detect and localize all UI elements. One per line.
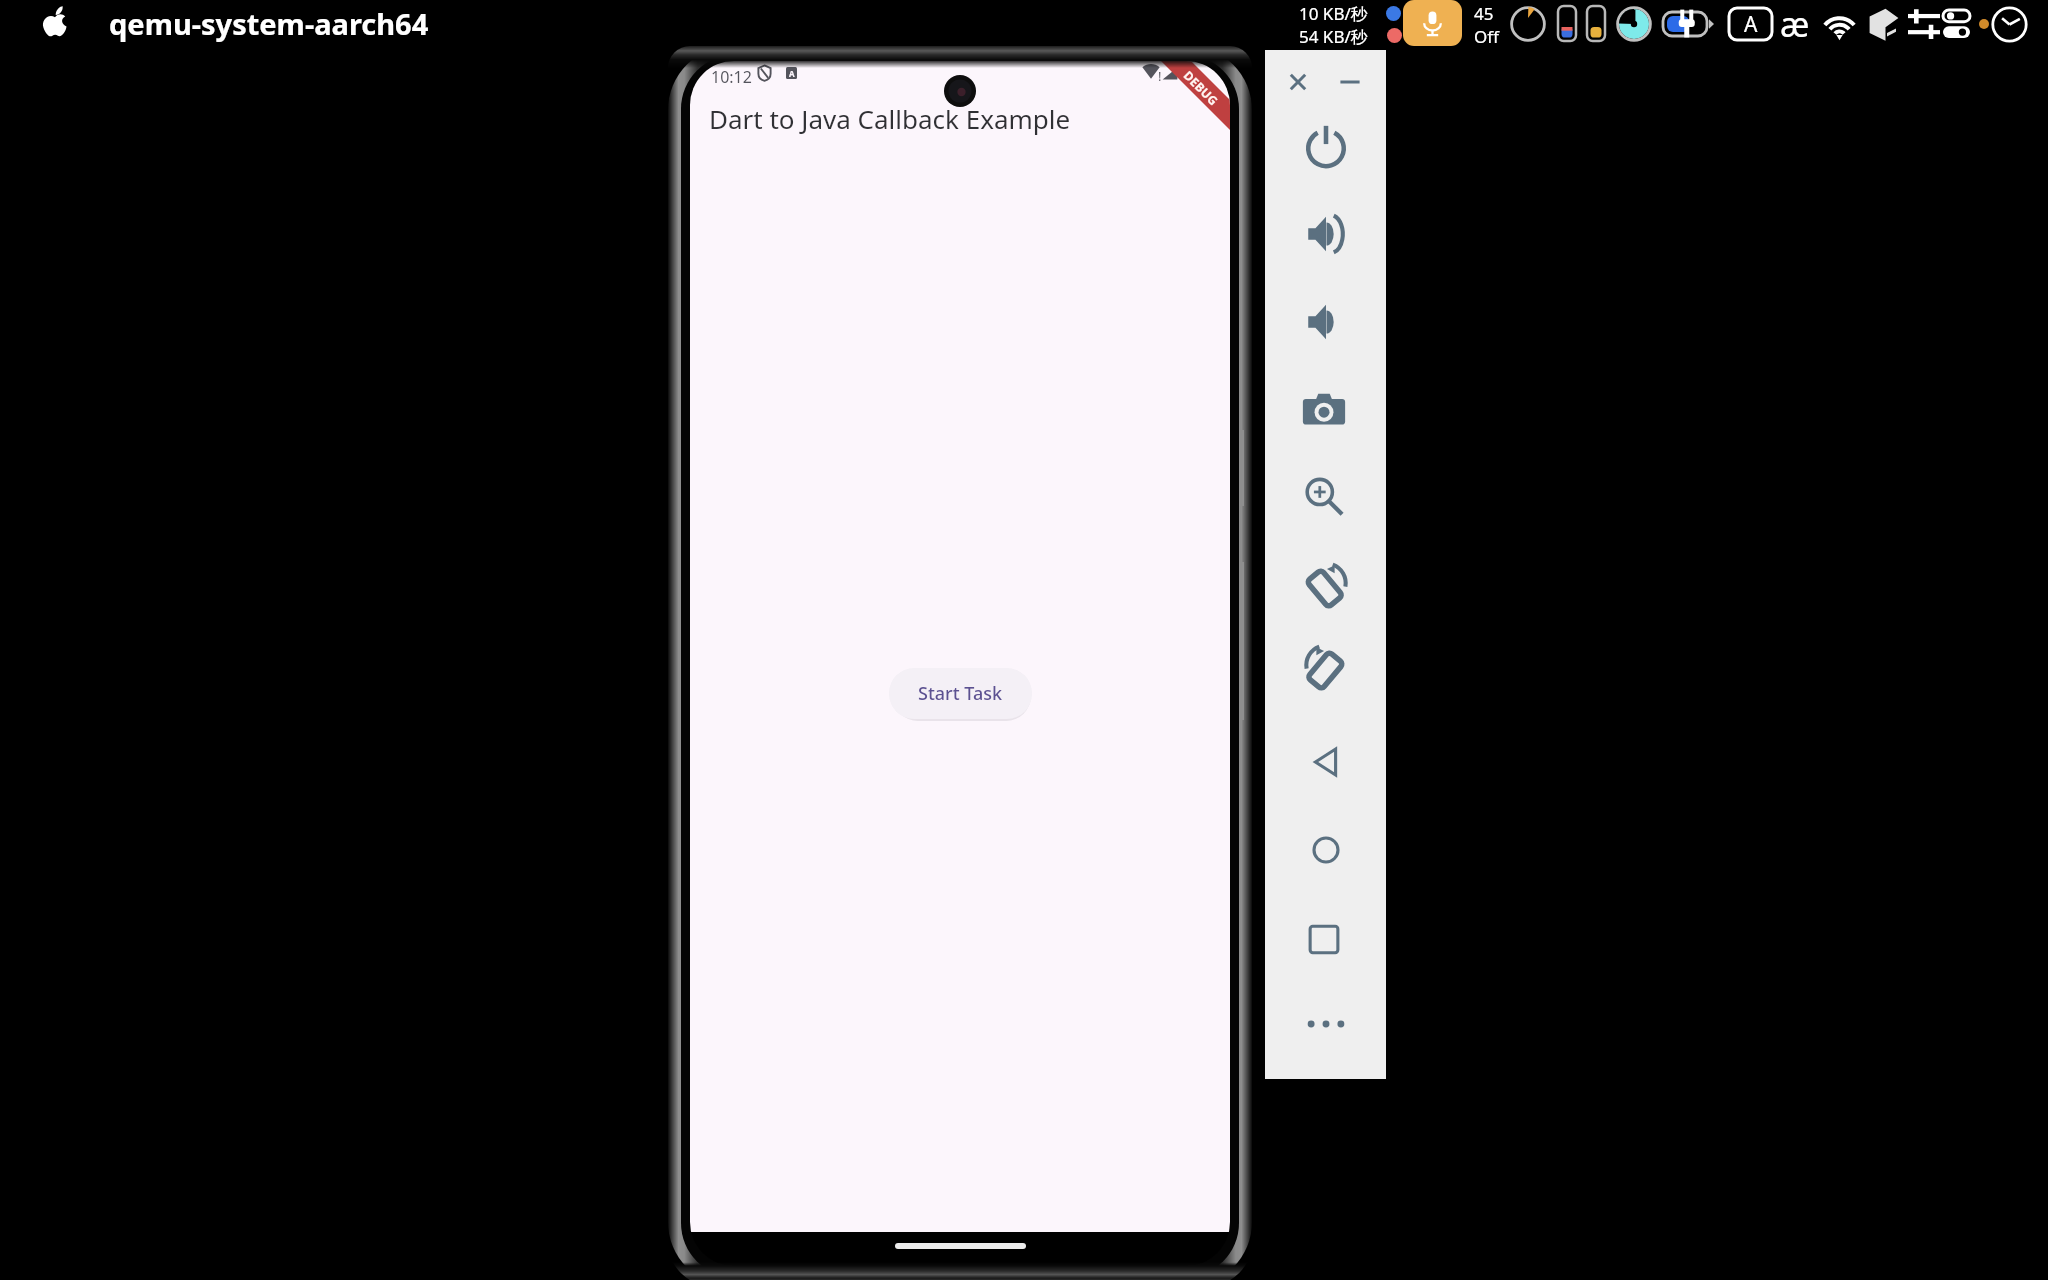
button[interactable]: App xyxy=(1869,8,1899,41)
button[interactable]: Microphone xyxy=(1403,0,1462,46)
button[interactable]: qemu-system-aarch64 xyxy=(109,4,429,42)
button[interactable]: Controls xyxy=(1908,8,1940,39)
staticText: 10 KB/秒 xyxy=(1299,2,1368,25)
button[interactable]: Battery xyxy=(1663,12,1714,36)
button[interactable]: Recent apps xyxy=(1302,914,1346,958)
button[interactable]: Power xyxy=(1302,122,1350,170)
button[interactable]: Zoom in xyxy=(1303,476,1345,518)
staticText: 54 KB/秒 xyxy=(1299,25,1368,48)
button[interactable]: Timer xyxy=(1510,6,1546,42)
button[interactable]: Keyboard layout xyxy=(1729,8,1772,40)
button[interactable]: Close xyxy=(1278,62,1318,102)
staticText: Off xyxy=(1474,25,1499,48)
button[interactable]: Toggles xyxy=(1943,10,1970,38)
button[interactable]: Apple menu xyxy=(39,6,71,38)
staticText: DEBUG xyxy=(1181,67,1222,109)
staticText: qemu-system-aarch64 xyxy=(109,4,429,42)
staticText: æ xyxy=(1780,1,1810,47)
staticText: 10:12 xyxy=(711,66,752,88)
button[interactable]: Screenshot xyxy=(1302,388,1346,432)
button[interactable]: Home xyxy=(1302,826,1350,874)
staticText: ! xyxy=(1158,67,1162,85)
button[interactable]: Wi-Fi xyxy=(1823,9,1856,42)
button[interactable]: Back xyxy=(1302,738,1350,786)
button[interactable]: Monitor xyxy=(1558,6,1576,41)
button[interactable]: 10 KB/秒 xyxy=(1299,2,1368,48)
button[interactable]: Minimize xyxy=(1330,62,1370,102)
button[interactable]: Volume down xyxy=(1302,298,1350,346)
button[interactable]: Clock xyxy=(1991,6,2028,43)
button[interactable]: More xyxy=(1302,1002,1350,1050)
button[interactable]: Rotate right xyxy=(1302,644,1350,692)
staticText: A xyxy=(1744,10,1758,39)
button[interactable]: 45 xyxy=(1474,2,1499,48)
staticText: A xyxy=(789,68,795,79)
staticText: Start Task xyxy=(918,681,1003,706)
button[interactable]: Start Task xyxy=(889,668,1032,719)
staticText: Dart to Java Callback Example xyxy=(709,101,1071,136)
button[interactable]: æ xyxy=(1780,1,1810,47)
button[interactable]: Rotate left xyxy=(1302,562,1350,610)
button[interactable]: Disk usage xyxy=(1616,6,1652,42)
button[interactable]: Volume up xyxy=(1302,210,1350,258)
button[interactable]: Monitor xyxy=(1587,6,1605,41)
staticText: 45 xyxy=(1474,2,1494,25)
